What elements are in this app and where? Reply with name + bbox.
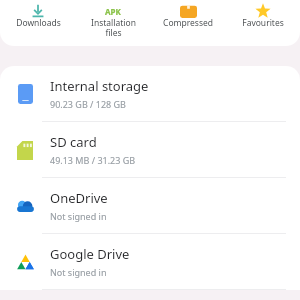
staticText: 90.23 GB / 128 GB — [50, 98, 126, 110]
staticText: SD card — [50, 133, 97, 151]
button[interactable]: SD card — [0, 122, 300, 177]
button[interactable]: Installation files — [78, 0, 148, 39]
other: Favourites — [255, 4, 271, 18]
button[interactable]: Compressed files — [153, 0, 223, 29]
staticText: OneDrive — [50, 189, 108, 207]
staticText: Internal storage — [50, 77, 149, 95]
staticText: APK — [105, 6, 121, 17]
button[interactable]: Internal storage — [0, 66, 300, 121]
button[interactable]: Downloads — [3, 0, 73, 29]
other: Downloads — [30, 4, 46, 18]
staticText: 49.13 MB / 31.23 GB — [50, 154, 136, 166]
staticText: Google Drive — [50, 245, 130, 263]
button[interactable]: Favourites — [228, 0, 298, 29]
staticText: Not signed in — [50, 210, 107, 222]
other: Installation files — [103, 4, 123, 18]
button[interactable]: Google Drive — [0, 234, 300, 289]
staticText: Not signed in — [50, 266, 107, 278]
staticText: Downloads — [16, 17, 61, 29]
staticText: Favourites — [242, 17, 284, 29]
staticText: Compressed — [163, 17, 213, 29]
other: Compressed files — [180, 4, 197, 18]
staticText: Installation files — [91, 17, 136, 39]
button[interactable]: OneDrive — [0, 178, 300, 233]
